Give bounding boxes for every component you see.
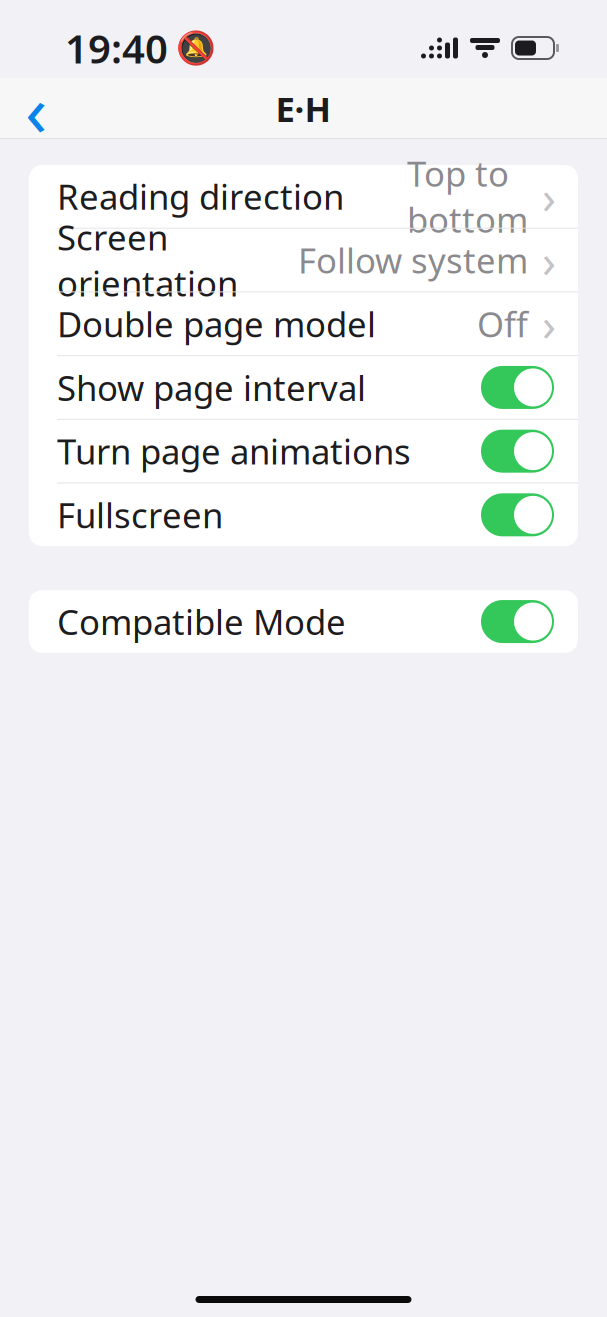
staticText: › — [542, 294, 556, 354]
button[interactable]: Screen orientation — [29, 229, 578, 292]
staticText: Screen orientation — [57, 214, 238, 306]
staticText: Top to bottom — [407, 150, 528, 242]
button[interactable]: Compatible Mode — [29, 590, 578, 653]
staticText: › — [542, 230, 556, 290]
staticText: Turn page animations — [57, 428, 411, 474]
button[interactable]: Fullscreen — [29, 483, 578, 546]
staticText: Follow system — [298, 237, 528, 283]
staticText: E·H — [275, 85, 331, 131]
button[interactable]: Back — [4, 78, 68, 138]
staticText: Double page model — [57, 301, 376, 347]
staticText: Show page interval — [57, 364, 366, 410]
button[interactable]: Reading direction — [29, 165, 578, 229]
button[interactable]: Turn page animations — [29, 420, 578, 483]
staticText: Compatible Mode — [57, 598, 346, 644]
staticText: 🔕 — [176, 30, 216, 66]
staticText: Fullscreen — [57, 492, 223, 538]
button[interactable]: Double page model — [29, 292, 578, 356]
staticText: Reading direction — [57, 173, 344, 219]
staticText: › — [542, 166, 556, 226]
staticText: ‹ — [25, 61, 47, 156]
staticText: 19:40 — [65, 21, 168, 74]
button[interactable]: Show page interval — [29, 356, 578, 420]
staticText: Off — [477, 301, 528, 347]
